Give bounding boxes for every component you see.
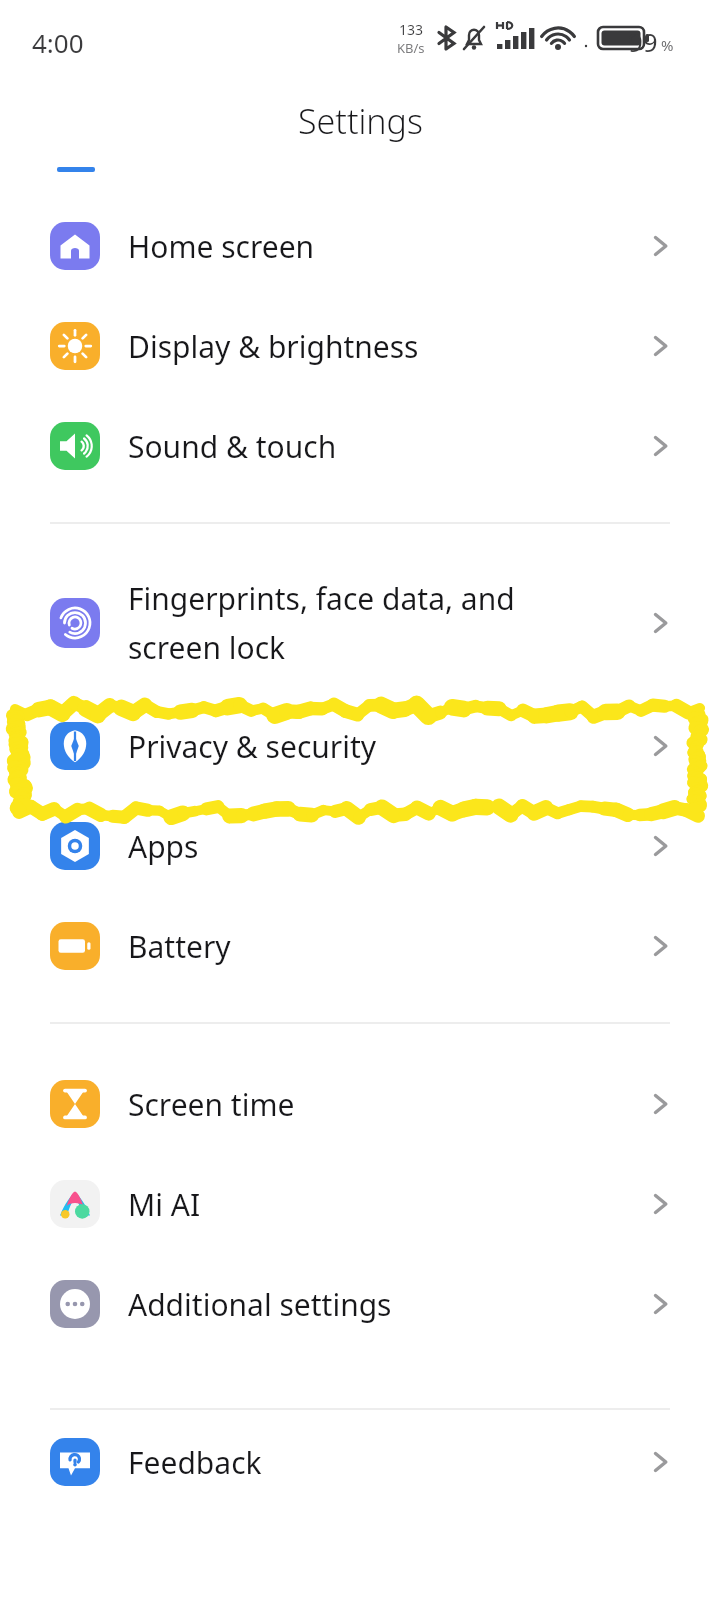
staticText: Display & brightness xyxy=(128,326,650,367)
staticText: Battery xyxy=(128,926,650,967)
button[interactable]: Additional settings xyxy=(0,1280,720,1328)
staticText: Sound & touch xyxy=(128,426,650,467)
button[interactable]: Battery xyxy=(0,922,720,970)
button[interactable]: Home screen xyxy=(0,222,720,270)
staticText: Mi AI xyxy=(128,1184,650,1225)
staticText: Fingerprints, face data, and xyxy=(128,578,515,619)
staticText: KB/s xyxy=(397,39,425,57)
staticText: Home screen xyxy=(128,226,650,267)
button[interactable]: Mi AI xyxy=(0,1180,720,1228)
button[interactable]: Display & brightness xyxy=(0,322,720,370)
staticText: Settings xyxy=(298,98,423,144)
staticText: Apps xyxy=(128,826,650,867)
staticText: screen lock xyxy=(128,627,286,668)
staticText: % xyxy=(661,35,674,55)
staticText: Feedback xyxy=(128,1442,650,1483)
button[interactable]: Fingerprints, face data, and xyxy=(0,574,720,672)
button[interactable]: Feedback xyxy=(0,1438,720,1486)
button[interactable]: Sound & touch xyxy=(0,422,720,470)
staticText: Screen time xyxy=(128,1084,650,1125)
button[interactable]: Privacy & security xyxy=(0,722,720,770)
staticText: Additional settings xyxy=(128,1284,650,1325)
staticText: 99 xyxy=(628,24,658,59)
staticText: Privacy & security xyxy=(128,726,650,767)
button[interactable]: Screen time xyxy=(0,1080,720,1128)
button[interactable]: Apps xyxy=(0,822,720,870)
staticText: 133 xyxy=(399,20,424,39)
other: Highlighted: Privacy & security xyxy=(10,702,706,818)
staticText: 4:00 xyxy=(32,25,84,60)
